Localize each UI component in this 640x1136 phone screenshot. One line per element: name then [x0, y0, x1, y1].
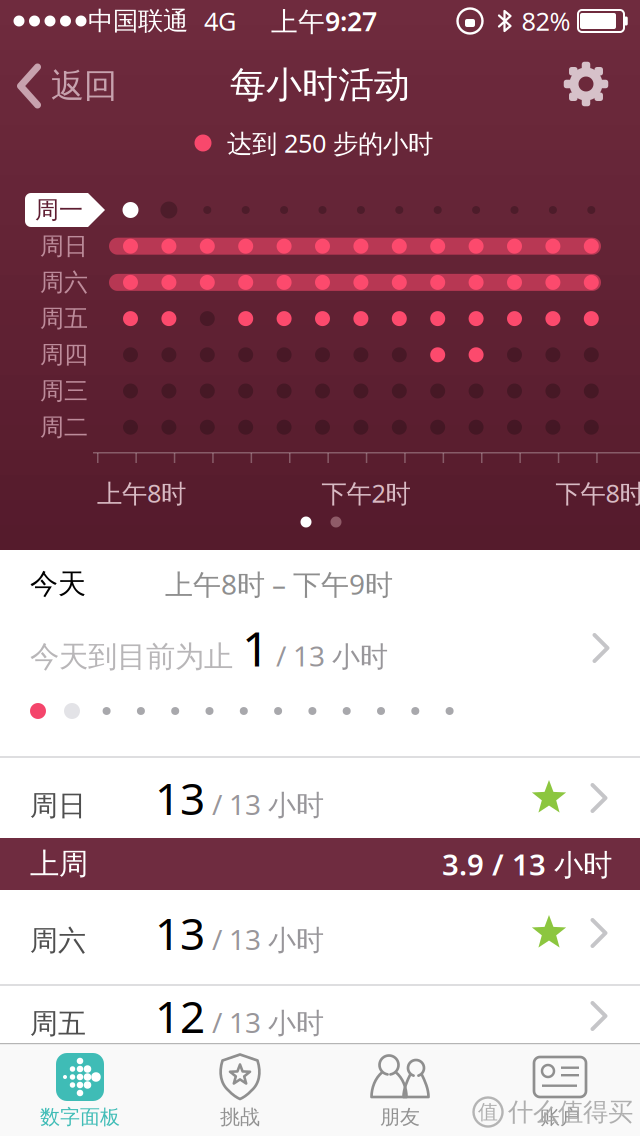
staticText: 下午2时 — [321, 476, 410, 510]
staticText: / 13 小时 — [205, 1004, 324, 1041]
staticText: 3.9 / 13 小时 — [442, 844, 612, 883]
staticText: 周五 — [40, 304, 88, 333]
staticText: 周六 — [40, 268, 88, 297]
staticText: 周一 — [35, 195, 83, 225]
button[interactable]: 周六 — [0, 891, 640, 975]
staticText: 82% — [521, 4, 570, 38]
staticText: 周三 — [40, 376, 88, 406]
staticText: 今天 — [30, 567, 86, 601]
staticText: 朋友 — [380, 1105, 420, 1129]
button[interactable]: 今天到目前为止 — [0, 612, 640, 684]
staticText: 上午8时 — [97, 476, 186, 510]
staticText: 上周 — [30, 846, 88, 882]
button[interactable]: 设置 — [562, 60, 610, 108]
staticText: 上午9:27 — [271, 3, 377, 39]
button[interactable]: 周五 — [0, 974, 640, 1058]
staticText: 返回 — [51, 65, 117, 106]
staticText: 周五 — [30, 1007, 86, 1041]
staticText: 周二 — [40, 412, 88, 442]
staticText: 什么值得买 — [508, 1096, 633, 1127]
staticText: 数字面板 — [40, 1105, 120, 1129]
button[interactable]: 挑战 — [160, 1043, 320, 1135]
staticText: 值 — [478, 1100, 498, 1124]
button[interactable]: 返回 — [15, 60, 145, 112]
staticText: 1 — [242, 616, 269, 680]
staticText: 今天到目前为止 — [30, 639, 242, 675]
staticText: / 13 小时 — [205, 921, 324, 958]
staticText: 账户 — [540, 1105, 580, 1129]
staticText: / 13 小时 — [269, 637, 388, 674]
staticText: 挑战 — [220, 1105, 260, 1129]
staticText: 每小时活动 — [230, 63, 410, 107]
staticText: 下午8时 — [555, 476, 640, 510]
staticText: 13 — [155, 904, 205, 962]
staticText: 中国联通 — [88, 5, 188, 36]
staticText: / 13 小时 — [205, 786, 324, 823]
staticText: 13 — [155, 769, 205, 827]
staticText: 上午8时 – 下午9时 — [165, 565, 393, 603]
staticText: 周日 — [40, 231, 88, 261]
button[interactable]: 周日 — [0, 756, 640, 840]
staticText: 周四 — [40, 340, 88, 370]
staticText: 4G — [204, 4, 236, 38]
button[interactable]: 账户 — [480, 1043, 640, 1135]
button[interactable]: 朋友 — [320, 1043, 480, 1135]
button[interactable]: 数字面板 — [0, 1043, 160, 1135]
staticText: 12 — [155, 987, 205, 1045]
staticText: 周日 — [30, 789, 86, 823]
staticText: 周六 — [30, 924, 86, 958]
staticText: 达到 250 步的小时 — [227, 126, 433, 160]
